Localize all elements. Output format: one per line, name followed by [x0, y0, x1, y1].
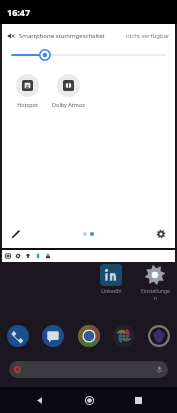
staticText: LinkedIn: [101, 288, 122, 295]
button[interactable]: Einstellunge n: [133, 264, 177, 302]
button[interactable]: Hotspot: [6, 72, 48, 110]
staticText: Hotspot: [17, 101, 38, 108]
button[interactable]: Chrome: [77, 324, 101, 348]
staticText: 16:47: [7, 6, 31, 18]
button[interactable]: Photos: [112, 324, 136, 348]
button[interactable]: Brightness: [2, 47, 175, 63]
button[interactable]: Messages: [41, 324, 65, 348]
staticText: Dolby Atmos: [52, 101, 85, 108]
button[interactable]: Settings: [152, 225, 170, 243]
staticText: Einstellunge n: [141, 288, 170, 302]
button[interactable]: Back: [28, 389, 50, 411]
button[interactable]: Edit: [7, 225, 25, 243]
button[interactable]: Home: [78, 389, 100, 411]
button[interactable]: Smartphone stummgeschaltet: [2, 29, 175, 43]
staticText: Smartphone stummgeschaltet: [19, 32, 105, 40]
button[interactable]: Recents: [127, 389, 149, 411]
button[interactable]: Search: [9, 361, 168, 378]
button[interactable]: Dolby Atmos: [48, 72, 89, 110]
staticText: nicht verfügbar: [126, 32, 170, 40]
button[interactable]: Phone: [6, 324, 30, 348]
button[interactable]: LinkedIn: [89, 264, 133, 295]
button[interactable]: Camera: [147, 324, 171, 348]
